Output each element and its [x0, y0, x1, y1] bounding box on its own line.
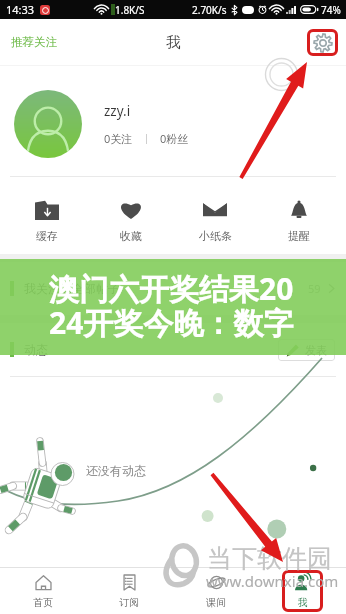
- staticText: www.downxia.com: [206, 571, 339, 591]
- staticText: 收藏: [120, 229, 142, 243]
- staticText: 推荐关注: [11, 35, 57, 49]
- button[interactable]: 发表: [278, 339, 335, 361]
- button[interactable]: Settings: [307, 29, 338, 56]
- staticText: 我: [166, 33, 181, 51]
- staticText: 我关注的全部帖子: [24, 281, 120, 296]
- staticText: 14:33: [6, 2, 35, 17]
- staticText: 我: [298, 596, 308, 609]
- button[interactable]: 我关注的全部帖子: [0, 262, 346, 315]
- button[interactable]: 我: [274, 570, 331, 613]
- staticText: 动态: [24, 342, 48, 357]
- button[interactable]: 0粉丝: [160, 131, 189, 146]
- button[interactable]: 收藏: [94, 183, 168, 249]
- staticText: zzy.i: [104, 102, 131, 120]
- staticText: 1.8K/S: [115, 3, 145, 17]
- button[interactable]: 首页: [13, 570, 73, 613]
- staticText: 小纸条: [199, 229, 232, 243]
- button[interactable]: 订阅: [99, 570, 159, 613]
- staticText: 2.70K/s: [192, 3, 227, 17]
- button[interactable]: Avatar: [14, 90, 82, 158]
- button[interactable]: 推荐关注: [8, 31, 60, 53]
- staticText: 首页: [33, 596, 53, 609]
- button[interactable]: 缓存: [10, 183, 84, 249]
- staticText: 74%: [321, 3, 341, 17]
- staticText: 澳门六开奖结果20 24开奖今晚：数字: [49, 268, 294, 343]
- button[interactable]: 0关注: [104, 131, 133, 146]
- button[interactable]: 小纸条: [178, 183, 252, 249]
- staticText: 发表: [305, 343, 327, 357]
- staticText: 课间: [206, 596, 226, 609]
- staticText: 缓存: [36, 229, 58, 243]
- button[interactable]: 提醒: [262, 183, 336, 249]
- staticText: 当下软件园: [207, 543, 332, 574]
- staticText: 0关注: [104, 131, 133, 146]
- button[interactable]: 课间: [186, 570, 246, 613]
- staticText: 提醒: [288, 229, 310, 243]
- staticText: 还没有动态: [86, 463, 146, 478]
- staticText: 0粉丝: [160, 131, 189, 146]
- staticText: 订阅: [119, 596, 139, 609]
- staticText: 59: [308, 281, 321, 296]
